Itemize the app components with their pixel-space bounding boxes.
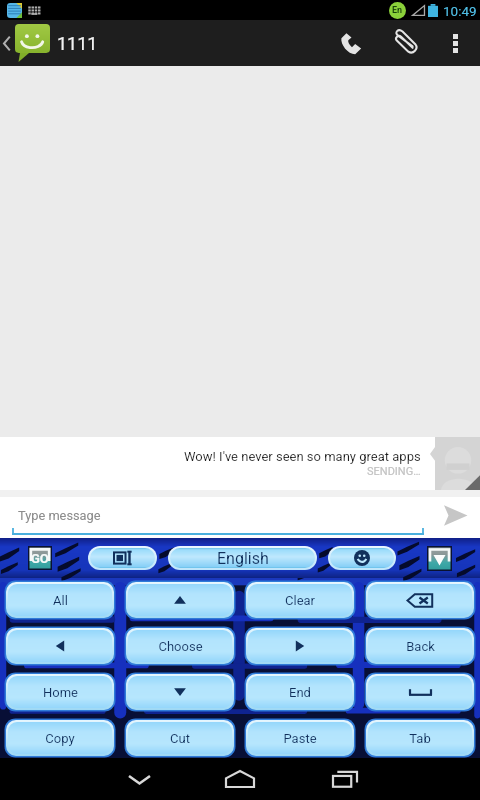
staticText: Cut — [170, 731, 190, 746]
button[interactable]: Down — [126, 674, 234, 710]
other: Up — [173, 593, 187, 607]
button[interactable]: Space — [366, 674, 474, 710]
staticText: SENDING… — [367, 465, 421, 478]
button[interactable]: GO Keyboard menu — [28, 546, 52, 570]
other: Space — [409, 688, 432, 696]
staticText: GO — [31, 551, 49, 566]
button[interactable]: Send — [424, 497, 480, 538]
staticText: English — [217, 549, 269, 568]
button[interactable]: Tab — [366, 720, 474, 756]
button[interactable]: Recent apps — [315, 758, 375, 800]
staticText: All — [53, 593, 68, 608]
button[interactable]: Backspace — [366, 582, 474, 618]
staticText: Clear — [285, 593, 315, 608]
staticText: Wow! I've never seen so many great apps — [184, 449, 421, 464]
button[interactable]: Up — [126, 582, 234, 618]
button[interactable]: Home — [210, 758, 270, 800]
other: Down — [173, 685, 187, 699]
staticText: End — [289, 685, 311, 700]
button[interactable]: Left — [6, 628, 114, 664]
staticText: Type message — [18, 508, 101, 523]
button[interactable]: Call — [324, 20, 378, 66]
button[interactable]: End — [246, 674, 354, 710]
staticText: 1111 — [57, 33, 98, 54]
button[interactable]: Home — [6, 674, 114, 710]
staticText: Copy — [45, 731, 75, 746]
staticText: 10:49 — [443, 3, 477, 19]
staticText: En — [392, 5, 403, 16]
staticText: Tab — [409, 731, 431, 746]
button[interactable]: Right — [246, 628, 354, 664]
button[interactable] — [328, 546, 396, 570]
other: Right — [293, 639, 307, 653]
button[interactable]: 1111 — [0, 20, 98, 66]
button[interactable] — [88, 546, 157, 570]
button[interactable]: Paste — [246, 720, 354, 756]
button[interactable]: Hide keyboard — [109, 758, 169, 800]
button[interactable]: English — [168, 546, 317, 570]
button[interactable]: Clear — [246, 582, 354, 618]
button[interactable]: Choose — [126, 628, 234, 664]
staticText: Choose — [158, 639, 203, 654]
other: Left — [53, 639, 67, 653]
button[interactable]: Attach — [378, 20, 430, 66]
button[interactable]: Back — [366, 628, 474, 664]
other: Backspace — [407, 593, 433, 608]
button[interactable]: Cut — [126, 720, 234, 756]
staticText: Home — [43, 685, 78, 700]
staticText: Back — [406, 639, 435, 654]
staticText: Paste — [283, 731, 317, 746]
button[interactable]: Hide keyboard — [427, 546, 452, 571]
button[interactable]: All — [6, 582, 114, 618]
button[interactable]: Copy — [6, 720, 114, 756]
button[interactable]: More options — [430, 20, 480, 66]
